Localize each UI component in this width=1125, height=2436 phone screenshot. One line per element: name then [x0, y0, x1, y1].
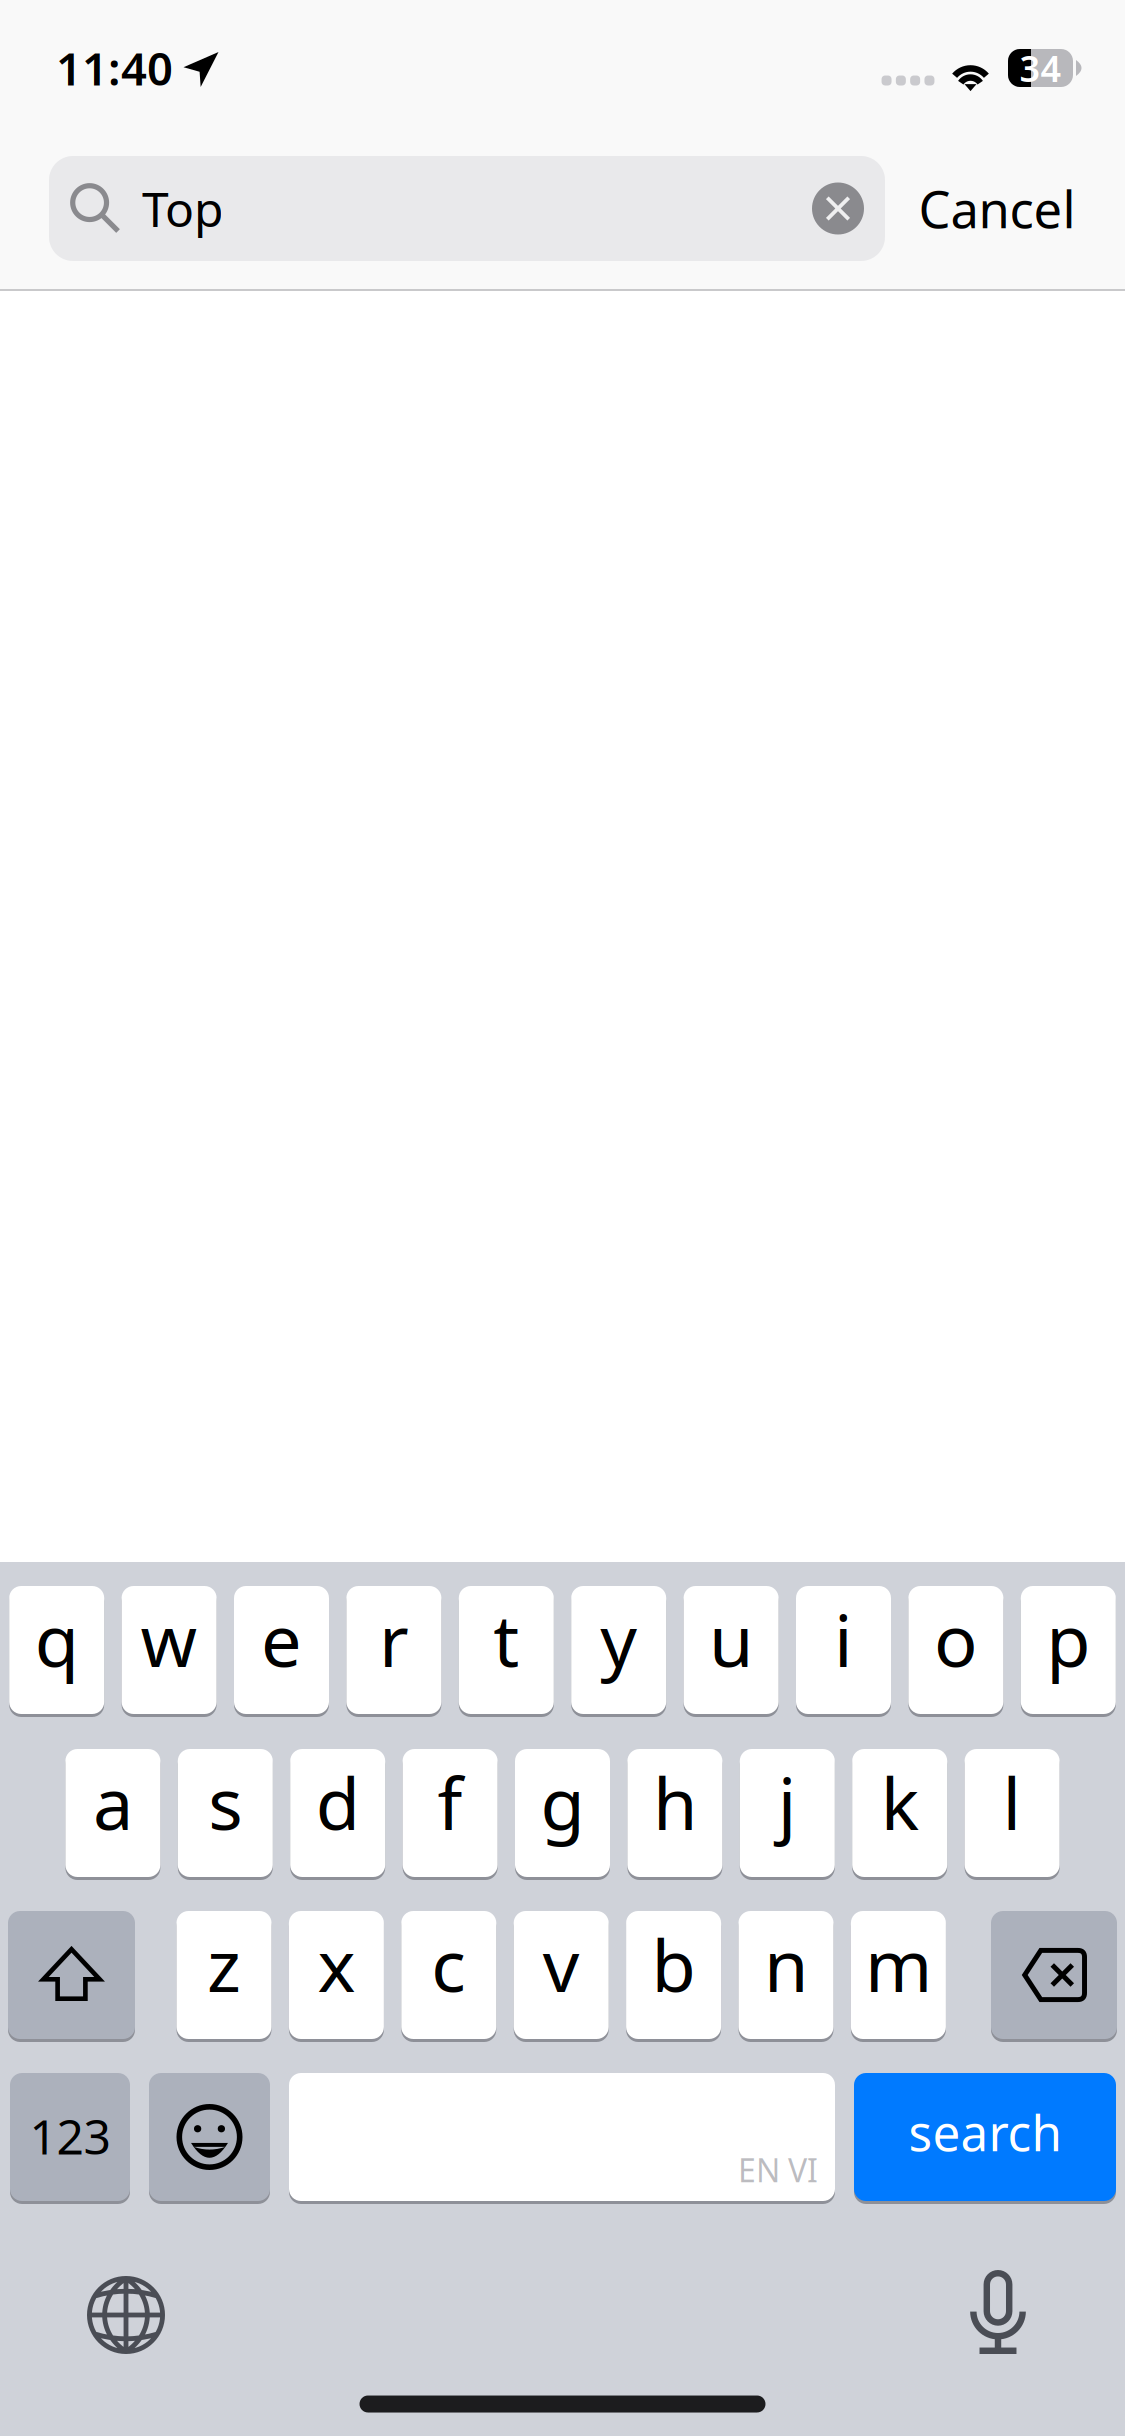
button[interactable]: j — [740, 1749, 835, 1877]
button[interactable]: u — [684, 1586, 779, 1714]
button[interactable]: q — [9, 1586, 104, 1714]
button[interactable]: Clear text — [800, 156, 876, 261]
button[interactable]: c — [401, 1911, 496, 2039]
staticText: 34 — [1019, 44, 1061, 92]
button[interactable]: v — [514, 1911, 609, 2039]
staticText: t — [493, 1591, 519, 1687]
staticText: search — [908, 2099, 1061, 2165]
staticText: j — [778, 1754, 797, 1850]
button[interactable]: k — [852, 1749, 947, 1877]
button[interactable]: Search: Top — [49, 156, 885, 261]
staticText: b — [652, 1916, 696, 2012]
button[interactable]: search — [854, 2073, 1116, 2201]
staticText: g — [540, 1754, 584, 1850]
button[interactable]: o — [908, 1586, 1003, 1714]
staticText: s — [208, 1754, 242, 1850]
button[interactable]: Next keyboard — [61, 2250, 191, 2380]
staticText: Top — [142, 177, 224, 240]
staticText: 11:40 — [56, 38, 173, 98]
button[interactable]: Emoji — [149, 2073, 270, 2201]
button[interactable]: d — [290, 1749, 385, 1877]
button[interactable]: p — [1021, 1586, 1116, 1714]
staticText: 123 — [29, 2104, 110, 2168]
staticText: y — [600, 1591, 637, 1687]
button[interactable]: i — [796, 1586, 891, 1714]
staticText: v — [543, 1916, 580, 2012]
button[interactable]: w — [122, 1586, 217, 1714]
staticText: a — [93, 1754, 133, 1850]
staticText: m — [865, 1916, 932, 2012]
button[interactable]: g — [515, 1749, 610, 1877]
button[interactable]: f — [403, 1749, 498, 1877]
button[interactable]: e — [234, 1586, 329, 1714]
button[interactable]: a — [65, 1749, 160, 1877]
button[interactable]: Space — [289, 2073, 835, 2201]
button[interactable]: m — [851, 1911, 946, 2039]
button[interactable]: z — [176, 1911, 271, 2039]
staticText: x — [317, 1916, 355, 2012]
staticText: z — [207, 1916, 241, 2012]
button[interactable]: Delete — [991, 1911, 1117, 2039]
staticText: e — [261, 1591, 302, 1687]
button[interactable]: s — [178, 1749, 273, 1877]
staticText: h — [653, 1754, 697, 1850]
button[interactable]: Dictation — [933, 2247, 1063, 2377]
staticText: f — [438, 1754, 463, 1850]
staticText: w — [141, 1591, 198, 1687]
staticText: d — [316, 1754, 360, 1850]
button[interactable]: 123 — [10, 2073, 130, 2201]
staticText: EN VI — [738, 2148, 818, 2191]
staticText: p — [1046, 1591, 1090, 1687]
button[interactable]: x — [289, 1911, 384, 2039]
staticText: u — [709, 1591, 753, 1687]
button[interactable]: y — [571, 1586, 666, 1714]
button[interactable]: r — [346, 1586, 441, 1714]
button[interactable]: n — [738, 1911, 833, 2039]
staticText: o — [934, 1591, 978, 1687]
staticText: r — [379, 1591, 409, 1687]
button[interactable]: Cancel — [887, 156, 1107, 261]
button[interactable]: t — [459, 1586, 554, 1714]
button[interactable]: Shift — [8, 1911, 135, 2039]
staticText: i — [834, 1591, 853, 1687]
button[interactable]: b — [626, 1911, 721, 2039]
button[interactable]: h — [627, 1749, 722, 1877]
staticText: l — [1003, 1754, 1022, 1850]
staticText: c — [431, 1916, 466, 2012]
staticText: n — [764, 1916, 808, 2012]
button[interactable]: l — [965, 1749, 1060, 1877]
staticText: k — [881, 1754, 919, 1850]
staticText: q — [35, 1591, 79, 1687]
staticText: Cancel — [918, 175, 1075, 242]
